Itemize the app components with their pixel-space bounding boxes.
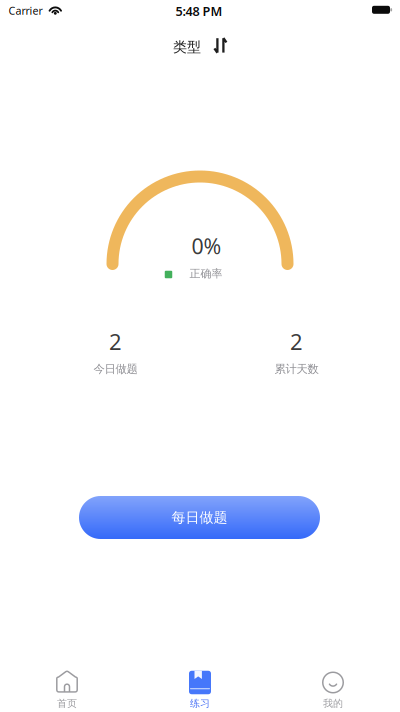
- button[interactable]: 每日做题: [79, 496, 320, 539]
- staticText: Carrier: [8, 3, 42, 18]
- staticText: 每日做题: [171, 509, 227, 526]
- staticText: 首页: [57, 697, 77, 710]
- staticText: 0%: [191, 231, 221, 261]
- staticText: 今日做题: [93, 362, 137, 376]
- staticText: 类型: [173, 38, 201, 56]
- staticText: 2: [290, 326, 303, 356]
- button[interactable]: 首页: [22, 664, 112, 712]
- staticText: 我的: [323, 697, 343, 710]
- button[interactable]: 练习: [155, 664, 245, 712]
- button[interactable]: 我的: [288, 664, 378, 712]
- staticText: 2: [109, 326, 122, 356]
- staticText: 5:48 PM: [175, 2, 222, 20]
- staticText: 正确率: [189, 267, 222, 280]
- button[interactable]: 类型: [163, 29, 237, 61]
- staticText: 累计天数: [274, 362, 318, 376]
- staticText: 练习: [190, 697, 210, 710]
